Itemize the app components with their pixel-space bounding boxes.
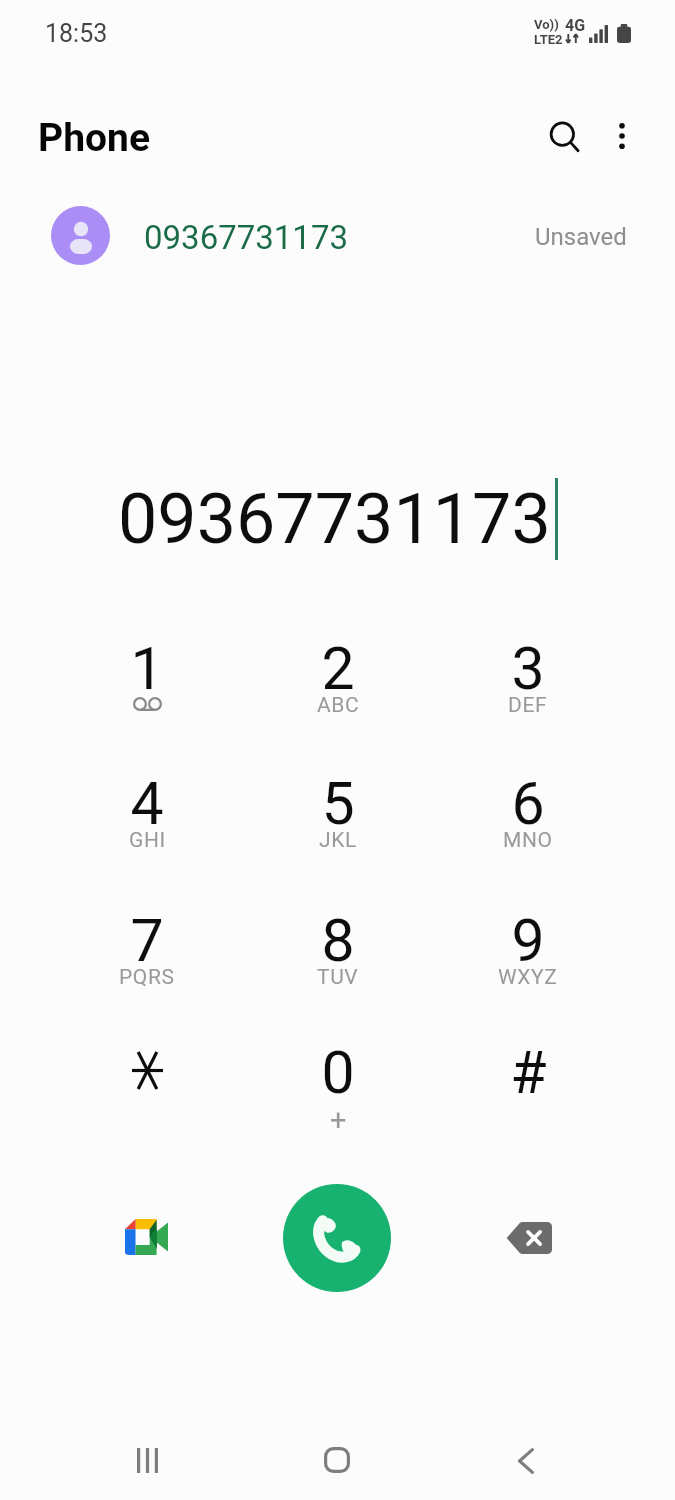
staticText: 9 (511, 906, 545, 975)
button[interactable]: 5 (243, 758, 433, 892)
button[interactable]: 09367731173 (0, 196, 675, 276)
staticText: 5 (321, 769, 355, 838)
button[interactable]: # (433, 1027, 623, 1161)
staticText: PQRS (119, 965, 175, 990)
button[interactable]: Home (307, 1430, 367, 1490)
button[interactable]: 6 (433, 758, 623, 892)
staticText: 1 (130, 634, 164, 703)
button[interactable]: 3 (433, 623, 623, 757)
staticText: WXYZ (498, 965, 558, 990)
button[interactable]: 2 (243, 623, 433, 757)
staticText: MNO (503, 828, 553, 853)
staticText: 8 (321, 906, 355, 975)
button[interactable]: 7 (52, 895, 242, 1029)
staticText: 18:53 (45, 19, 108, 48)
staticText: Unsaved (535, 223, 627, 251)
button[interactable]: 4 (52, 758, 242, 892)
button[interactable]: Back (496, 1430, 556, 1490)
staticText: Vo)) (534, 17, 559, 32)
button[interactable]: star (52, 1027, 242, 1161)
staticText: 09367731173 (144, 218, 349, 257)
button[interactable]: Search (536, 110, 592, 166)
staticText: 4G (565, 16, 586, 35)
staticText: ABC (317, 693, 360, 718)
staticText: 0 (321, 1038, 355, 1107)
button[interactable]: 0 (243, 1027, 433, 1161)
staticText: + (330, 1103, 347, 1137)
staticText: 7 (130, 906, 164, 975)
button[interactable]: Recents (117, 1430, 177, 1490)
staticText: 3 (511, 634, 545, 703)
staticText: JKL (319, 828, 357, 853)
button[interactable]: Video call (107, 1198, 187, 1278)
button[interactable]: Call (283, 1184, 391, 1292)
staticText: TUV (317, 965, 359, 990)
staticText: 09367731173 (118, 478, 551, 560)
staticText: 2 (321, 634, 355, 703)
button[interactable]: 1 (52, 623, 242, 757)
button[interactable]: Backspace (489, 1198, 569, 1278)
button[interactable]: 09367731173 (0, 478, 675, 560)
button[interactable]: 9 (433, 895, 623, 1029)
staticText: LTE2 (534, 32, 563, 47)
staticText: 6 (511, 769, 545, 838)
staticText: GHI (129, 828, 166, 853)
button[interactable]: 8 (243, 895, 433, 1029)
staticText: DEF (508, 693, 548, 718)
staticText: Phone (38, 115, 150, 161)
staticText: 4 (130, 769, 164, 838)
staticText: # (510, 1038, 547, 1107)
button[interactable]: More options (599, 113, 645, 159)
